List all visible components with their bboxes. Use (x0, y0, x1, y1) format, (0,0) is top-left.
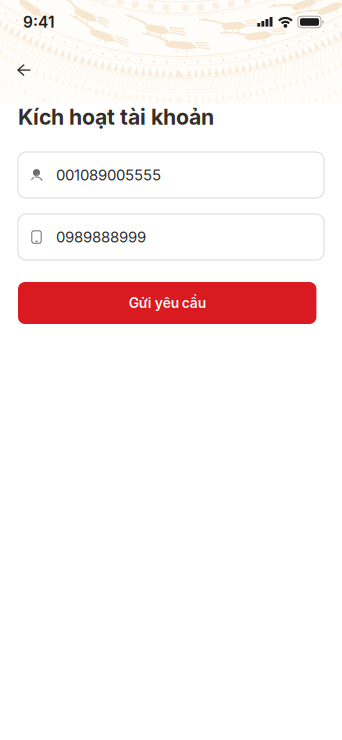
staticText: 0989888999 (56, 228, 146, 246)
button[interactable]: Back (0, 44, 44, 84)
staticText: Kích hoạt tài khoản (18, 104, 214, 130)
staticText: 9:41 (23, 13, 55, 31)
button[interactable]: Gửi yêu cầu (18, 282, 316, 324)
staticText: 001089005555 (56, 166, 161, 184)
staticText: Gửi yêu cầu (129, 295, 206, 311)
